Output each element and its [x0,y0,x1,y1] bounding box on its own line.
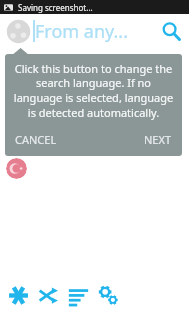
staticText: From any... [35,19,128,44]
staticText: Saving screenshot... [18,2,93,13]
button[interactable]: NEXT [142,130,174,149]
button[interactable]: Settings [95,282,121,308]
button[interactable]: CANCEL [13,130,59,149]
staticText: NEXT [144,132,172,147]
button[interactable]: Special characters [5,282,31,308]
button[interactable]: Sort results [65,282,91,308]
button[interactable]: Swap languages [35,282,61,308]
button[interactable]: Turkish language [6,158,27,179]
button[interactable]: Change search language [6,19,31,44]
button[interactable]: Search [156,16,186,46]
staticText: Click this button to change the search l… [13,61,174,121]
staticText: CANCEL [15,132,57,147]
button[interactable]: From any... [35,14,156,48]
